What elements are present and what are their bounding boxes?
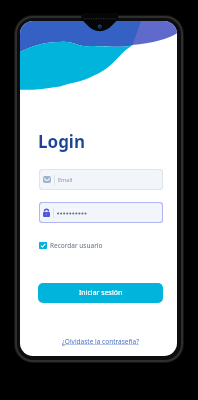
button[interactable] [40,203,162,222]
button[interactable]: Iniciar sesión [38,283,163,303]
staticText: Email [58,176,73,184]
button[interactable]: Email [40,170,162,189]
staticText: Recordar usuario [50,241,103,250]
staticText: Iniciar sesión [79,288,123,298]
button[interactable]: Recordar usuario [39,241,103,250]
button[interactable]: ¿Olvidaste la contraseña? [62,337,139,346]
staticText: Login [38,130,86,153]
